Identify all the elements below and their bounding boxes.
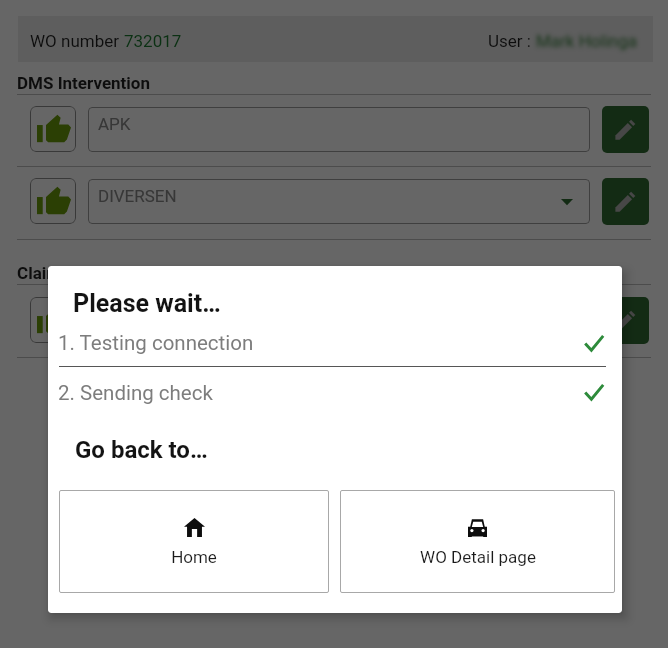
button[interactable]: DIVERSEN — [88, 179, 590, 224]
staticText: WO number — [30, 31, 124, 51]
staticText: DIVERSEN — [98, 186, 177, 206]
staticText: User : — [488, 31, 536, 51]
staticText: Mark Holinga — [536, 31, 637, 51]
staticText: Home — [171, 547, 217, 567]
staticText: Please wait… — [73, 289, 221, 318]
button[interactable]: Edit — [602, 178, 649, 225]
button[interactable]: Approve — [30, 178, 76, 224]
staticText: 732017 — [124, 31, 182, 51]
button[interactable]: WO Detail page — [340, 490, 615, 593]
staticText: 1. Testing connection — [58, 331, 254, 355]
button[interactable]: APK — [88, 107, 590, 152]
button[interactable]: Edit — [602, 106, 649, 153]
button[interactable]: Home — [59, 490, 329, 593]
staticText: APK — [98, 114, 131, 134]
staticText: Go back to… — [75, 436, 208, 464]
staticText: Claim — [17, 263, 61, 283]
button[interactable]: Approve — [30, 297, 76, 343]
staticText: WO Detail page — [420, 547, 536, 567]
staticText: 2. Sending check — [58, 381, 213, 405]
button[interactable] — [88, 298, 590, 343]
button[interactable]: Approve — [30, 106, 76, 152]
staticText: DMS Intervention — [17, 73, 150, 93]
button[interactable]: Edit — [602, 297, 649, 344]
